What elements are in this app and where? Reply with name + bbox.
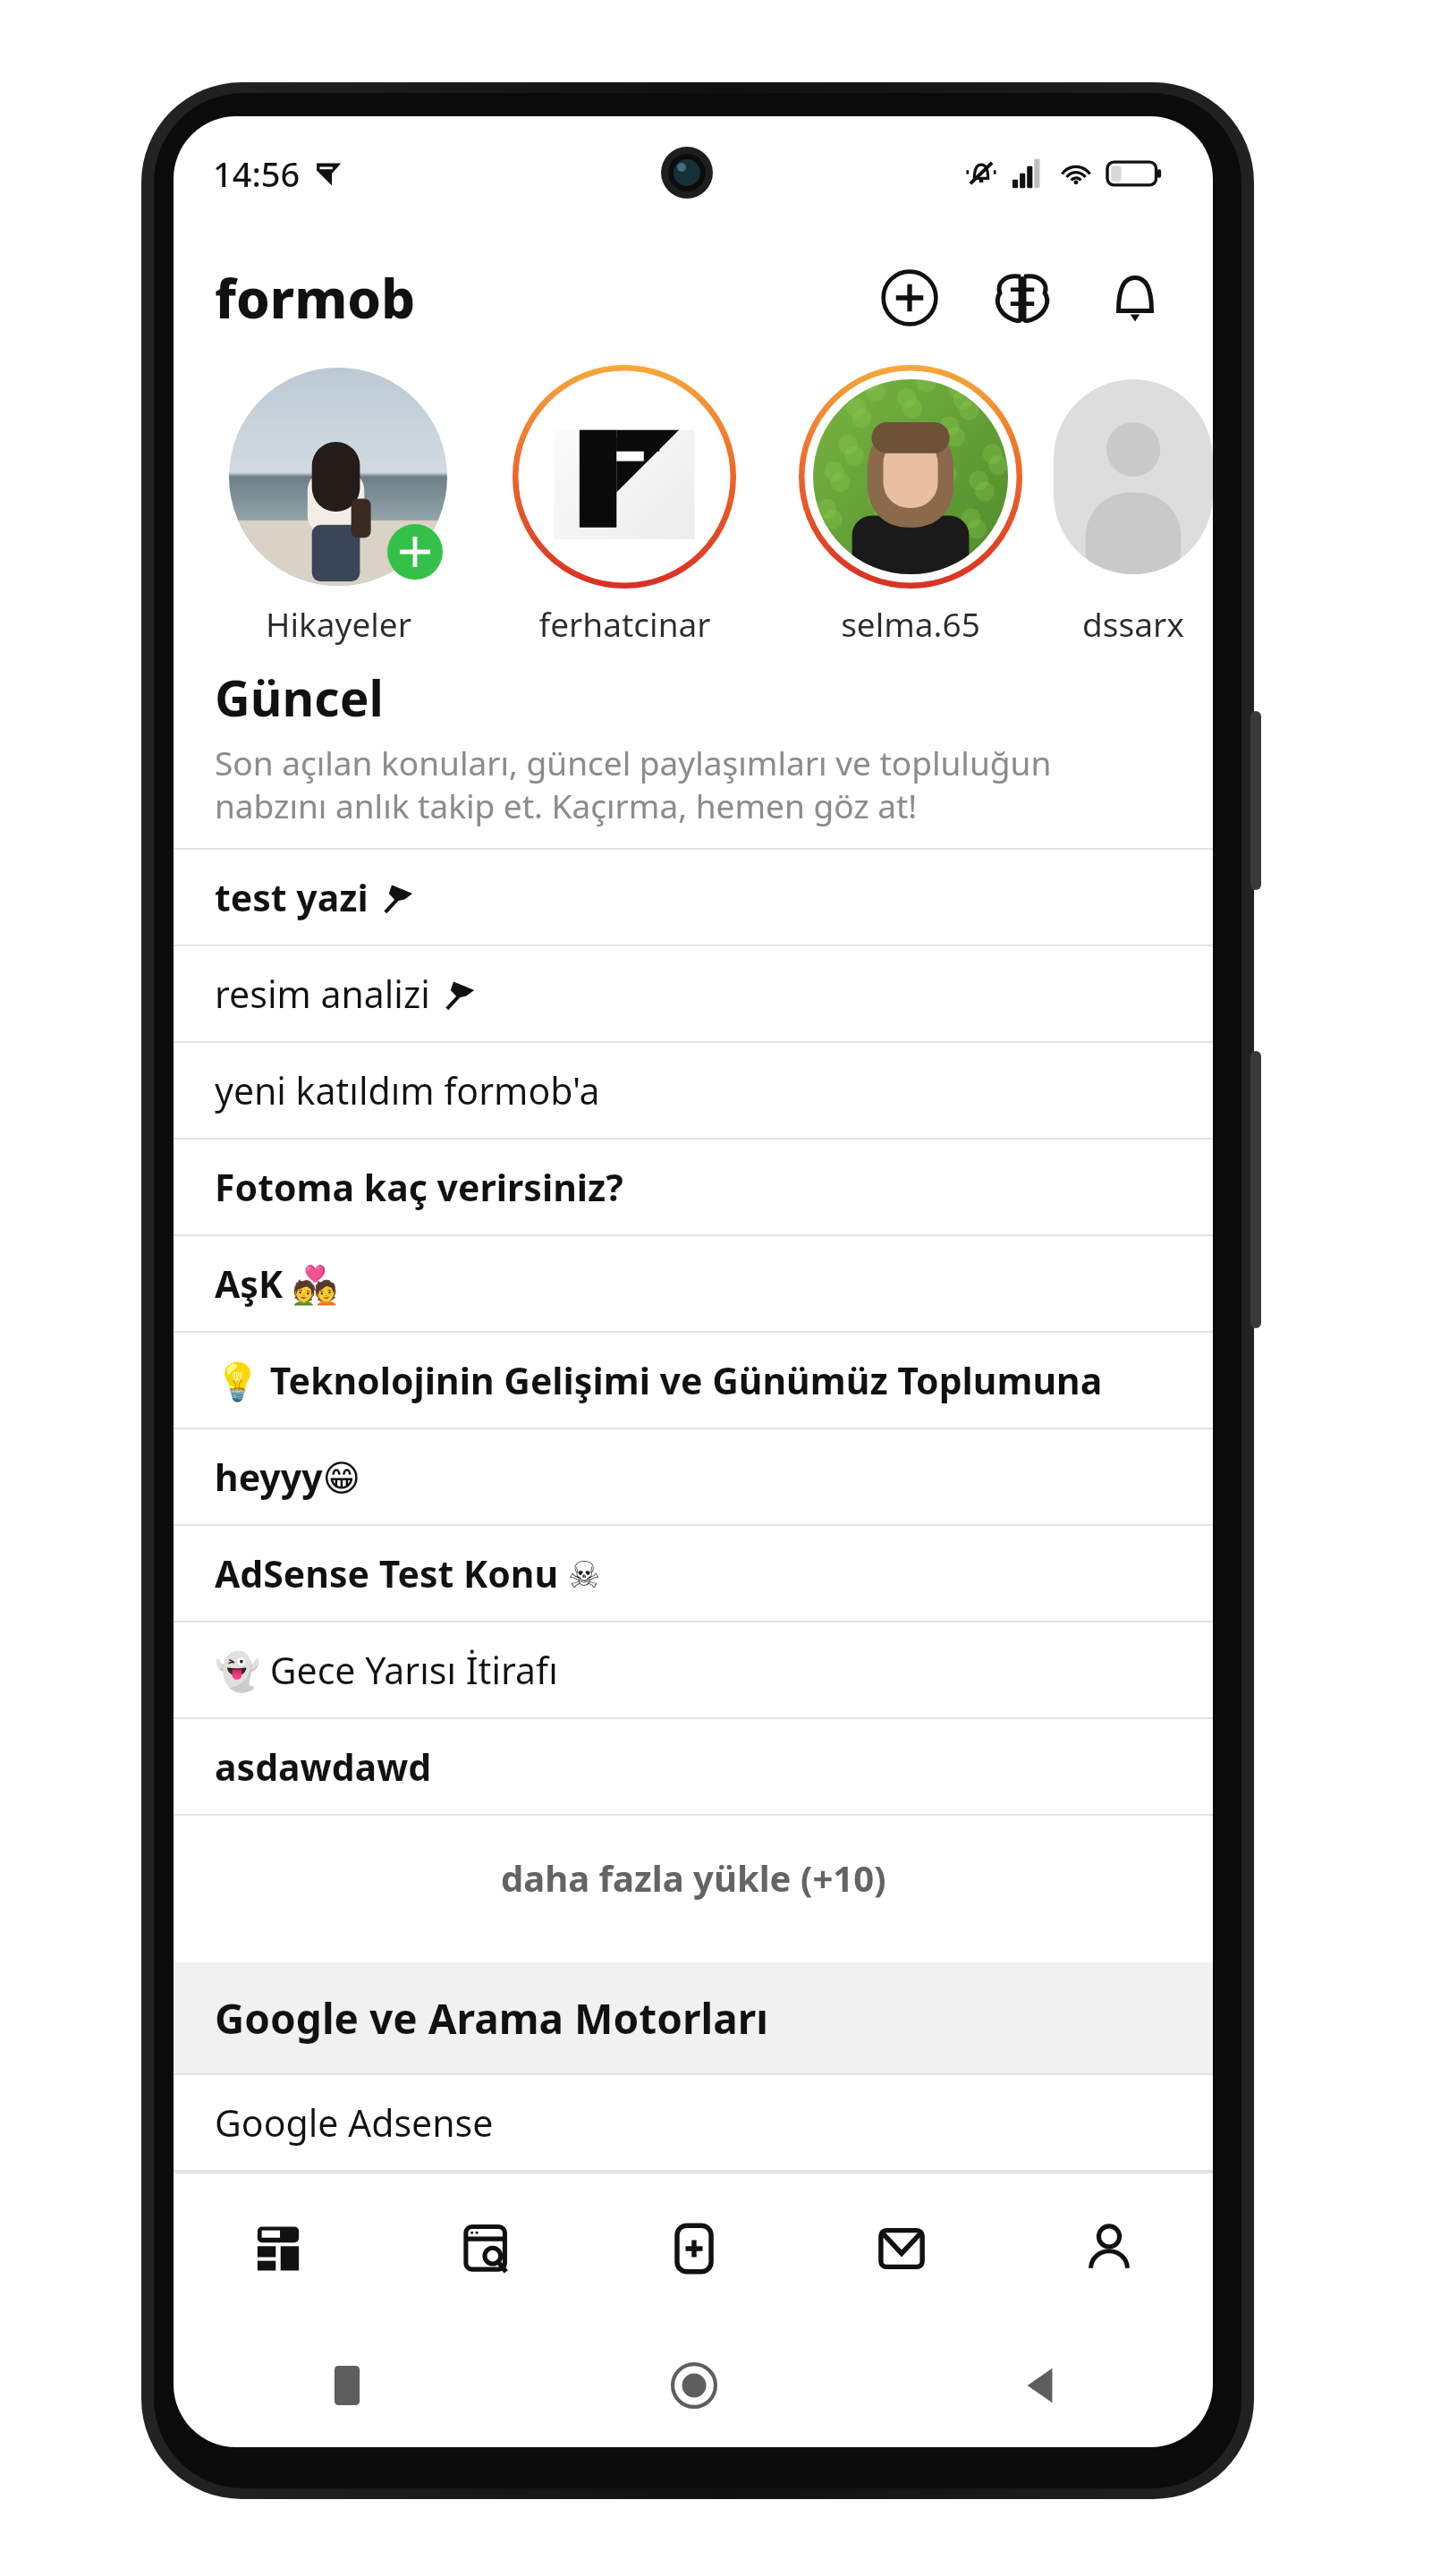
- button[interactable]: Feed: [174, 2173, 382, 2324]
- staticText: test yazi: [215, 872, 369, 922]
- button[interactable]: ferhatcinar: [481, 365, 767, 646]
- button[interactable]: heyyy😁: [174, 1429, 1213, 1526]
- staticText: 👻 Gece Yarısı İtirafı: [215, 1645, 558, 1695]
- staticText: daha fazla yükle (+10): [501, 1853, 886, 1902]
- staticText: yeni katıldım formob'a: [215, 1065, 600, 1115]
- button[interactable]: Messages: [798, 2173, 1005, 2324]
- button[interactable]: New post: [590, 2173, 798, 2324]
- staticText: Son açılan konuları, güncel paylaşımları…: [215, 740, 1172, 828]
- staticText: ferhatcinar: [538, 601, 711, 646]
- button[interactable]: test yazi: [174, 850, 1213, 946]
- button[interactable]: asdawdawd: [174, 1719, 1213, 1816]
- button[interactable]: yeni katıldım formob'a: [174, 1043, 1213, 1140]
- staticText: Fotoma kaç verirsiniz?: [215, 1162, 623, 1212]
- staticText: Google ve Arama Motorları: [215, 1990, 769, 2046]
- button[interactable]: Notifications: [1097, 259, 1174, 336]
- button[interactable]: AdSense Test Konu ☠️: [174, 1526, 1213, 1623]
- button[interactable]: Google Adsense: [174, 2075, 1213, 2172]
- staticText: selma.65: [841, 601, 980, 646]
- staticText: Hikayeler: [266, 601, 411, 646]
- staticText: 14:56: [213, 150, 301, 197]
- button[interactable]: AI assistant: [984, 259, 1061, 336]
- staticText: Google Adsense: [215, 2097, 494, 2148]
- staticText: AşK 💑: [215, 1258, 338, 1309]
- button[interactable]: Create post: [871, 259, 948, 336]
- button[interactable]: dssarx: [1054, 365, 1213, 646]
- staticText: resim analizi: [215, 969, 430, 1019]
- button[interactable]: Hikayeler: [195, 365, 481, 646]
- button[interactable]: 👻 Gece Yarısı İtirafı: [174, 1623, 1213, 1719]
- button[interactable]: 💡 Teknolojinin Gelişimi ve Günümüz Toplu…: [174, 1333, 1213, 1429]
- staticText: AdSense Test Konu ☠️: [215, 1548, 601, 1598]
- button[interactable]: resim analizi: [174, 946, 1213, 1043]
- staticText: formob: [215, 261, 416, 335]
- staticText: 💡 Teknolojinin Gelişimi ve Günümüz Toplu…: [215, 1355, 1186, 1405]
- button[interactable]: AşK 💑: [174, 1236, 1213, 1333]
- staticText: Güncel: [215, 664, 384, 731]
- button[interactable]: selma.65: [767, 365, 1054, 646]
- button[interactable]: Search: [382, 2173, 590, 2324]
- staticText: asdawdawd: [215, 1741, 432, 1792]
- button[interactable]: Profile: [1005, 2173, 1213, 2324]
- staticText: heyyy😁: [215, 1452, 361, 1502]
- button[interactable]: daha fazla yükle (+10): [174, 1816, 1213, 1939]
- staticText: dssarx: [1082, 601, 1184, 646]
- button[interactable]: Fotoma kaç verirsiniz?: [174, 1140, 1213, 1236]
